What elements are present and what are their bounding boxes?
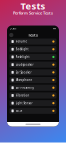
button[interactable]: Vibration bbox=[9, 92, 56, 98]
button[interactable]: Ear Proximity bbox=[9, 85, 56, 91]
staticText: Volume bbox=[15, 40, 27, 43]
staticText: Loudspeaker bbox=[15, 63, 33, 66]
button[interactable]: Flashlight bbox=[9, 54, 56, 60]
staticText: Backlight bbox=[15, 47, 28, 51]
button[interactable]: Loudspeaker bbox=[9, 62, 56, 68]
staticText: Wi-Fi bbox=[15, 109, 22, 113]
staticText: Microphone bbox=[15, 78, 32, 82]
staticText: Tests bbox=[20, 0, 45, 12]
staticText: Perform Service Tests bbox=[13, 10, 53, 16]
staticText: Flashlight bbox=[15, 55, 29, 59]
button[interactable]: Back bbox=[9, 33, 13, 37]
button[interactable]: Backlight bbox=[9, 46, 56, 52]
staticText: Light Sensor bbox=[15, 101, 32, 105]
button[interactable]: Wi-Fi bbox=[9, 108, 56, 114]
button[interactable]: Ear Speaker bbox=[9, 69, 56, 75]
staticText: Ear Speaker bbox=[15, 71, 31, 74]
button[interactable]: Light Sensor bbox=[9, 100, 56, 106]
staticText: Ear Proximity bbox=[15, 86, 33, 89]
staticText: Tests bbox=[28, 32, 38, 38]
button[interactable]: Microphone bbox=[9, 77, 56, 83]
staticText: 9:41 bbox=[10, 27, 17, 30]
button[interactable]: Volume bbox=[9, 38, 56, 45]
staticText: Vibration bbox=[15, 94, 29, 97]
